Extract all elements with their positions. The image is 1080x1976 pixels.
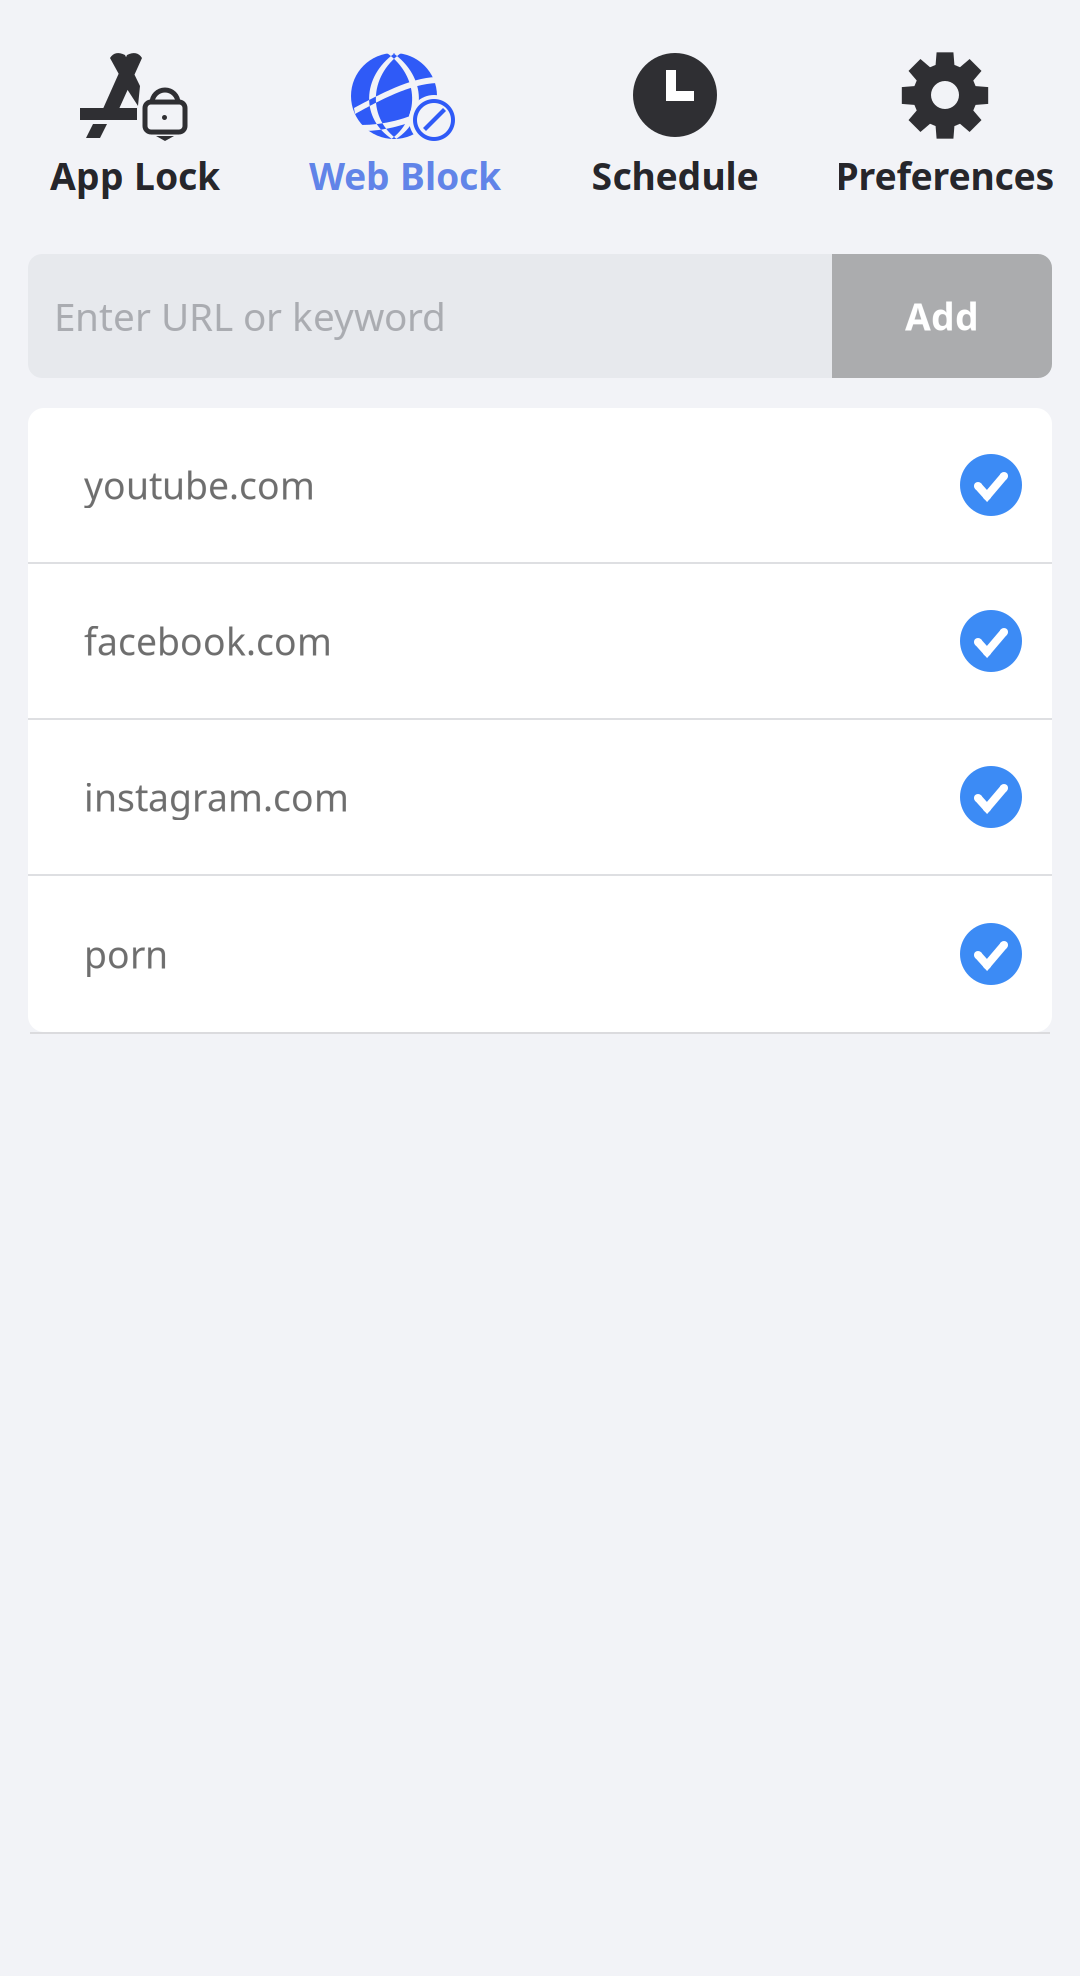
button[interactable]: Web Block xyxy=(270,53,540,200)
button[interactable]: App Lock xyxy=(0,53,270,200)
staticText: Schedule xyxy=(591,151,758,200)
staticText: Add xyxy=(905,291,979,341)
staticText: Enter URL or keyword xyxy=(54,290,446,342)
staticText: youtube.com xyxy=(84,460,315,510)
staticText: App Lock xyxy=(50,151,220,200)
staticText: instagram.com xyxy=(84,772,349,822)
button[interactable]: instagram.com xyxy=(28,720,1052,874)
button[interactable]: youtube.com xyxy=(28,408,1052,562)
staticText: Preferences xyxy=(835,151,1054,200)
button[interactable]: Add xyxy=(832,254,1052,378)
staticText: Web Block xyxy=(309,151,501,200)
button[interactable]: facebook.com xyxy=(28,564,1052,718)
staticText: facebook.com xyxy=(84,616,332,666)
staticText: porn xyxy=(84,929,168,979)
button[interactable]: porn xyxy=(28,876,1052,1032)
button[interactable]: Enter URL or keyword xyxy=(28,254,832,378)
button[interactable]: Preferences xyxy=(810,53,1080,200)
button[interactable]: Schedule xyxy=(540,53,810,200)
